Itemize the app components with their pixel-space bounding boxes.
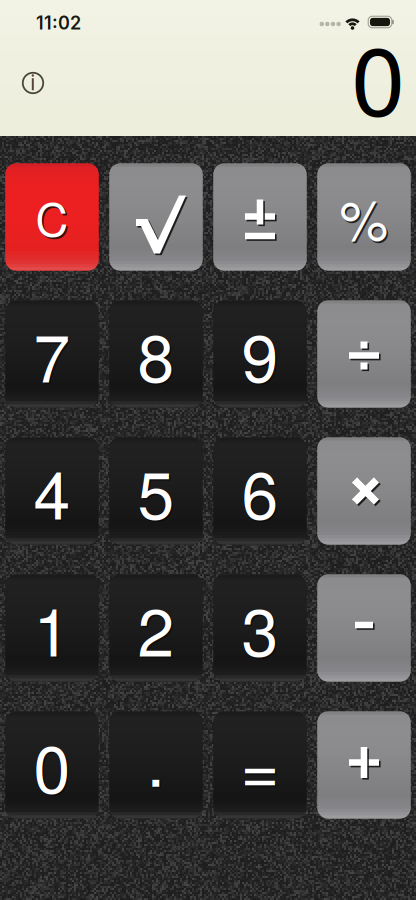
staticText: 5	[137, 444, 174, 538]
button[interactable]: 5	[109, 437, 202, 544]
button[interactable]: .	[109, 711, 202, 818]
button[interactable]: 1	[5, 574, 98, 681]
staticText: %	[339, 178, 388, 256]
staticText: 2	[137, 581, 174, 675]
button[interactable]: Divide	[317, 300, 410, 407]
staticText: %	[341, 179, 390, 258]
staticText: 6	[241, 444, 278, 538]
staticText: 3	[243, 582, 280, 677]
staticText: 11:02	[36, 12, 81, 34]
staticText: C	[35, 184, 68, 249]
staticText: 1	[35, 582, 72, 677]
button[interactable]: 4	[5, 437, 98, 544]
staticText: C	[37, 186, 70, 251]
staticText: i	[30, 67, 36, 97]
staticText: 4	[33, 444, 70, 538]
staticText: 3	[241, 581, 278, 675]
staticText: 9	[241, 307, 278, 401]
staticText: 8	[137, 307, 174, 401]
button[interactable]: Minus	[317, 574, 410, 681]
staticText: 8	[139, 308, 176, 403]
button[interactable]: =	[213, 711, 306, 818]
button[interactable]: Plus minus	[213, 163, 306, 270]
staticText: 5	[139, 445, 176, 540]
staticText: 0	[33, 718, 70, 812]
staticText: 0	[35, 719, 72, 814]
button[interactable]: %	[317, 163, 410, 270]
button[interactable]: Multiply	[317, 437, 410, 544]
button[interactable]: 7	[5, 300, 98, 407]
button[interactable]: 2	[109, 574, 202, 681]
staticText: 0	[351, 6, 404, 144]
staticText: 1	[33, 581, 70, 675]
staticText: 7	[35, 308, 72, 403]
staticText: 7	[33, 307, 70, 401]
button[interactable]: 3	[213, 574, 306, 681]
staticText: 9	[243, 308, 280, 403]
button[interactable]: Square root	[109, 163, 202, 270]
button[interactable]: 8	[109, 300, 202, 407]
button[interactable]: 6	[213, 437, 306, 544]
staticText: .	[148, 712, 167, 807]
button[interactable]: Info	[11, 61, 55, 105]
button[interactable]: 0	[5, 711, 98, 818]
button[interactable]: Plus	[317, 711, 410, 818]
staticText: .	[146, 710, 165, 806]
staticText: 6	[243, 445, 280, 540]
staticText: =	[240, 717, 279, 813]
staticText: 4	[35, 445, 72, 540]
button[interactable]: 9	[213, 300, 306, 407]
button[interactable]: C	[5, 163, 98, 270]
staticText: 2	[139, 582, 176, 677]
staticText: =	[242, 719, 281, 814]
